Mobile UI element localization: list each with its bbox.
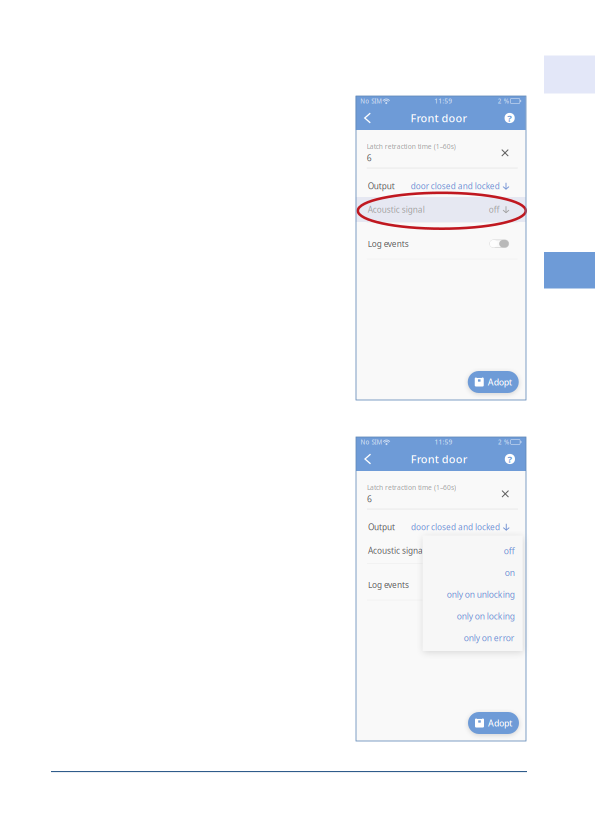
staticText: Acoustic signal — [368, 545, 425, 556]
button[interactable]: Clear — [498, 487, 512, 501]
button[interactable]: Help — [499, 106, 526, 130]
staticText: 2 % — [498, 438, 509, 446]
staticText: only on error — [464, 632, 515, 643]
staticText: Adopt — [488, 717, 512, 729]
staticText: door closed and locked — [411, 521, 500, 532]
staticText: Front door — [410, 111, 467, 125]
staticText: on — [505, 567, 515, 578]
staticText: 2 % — [498, 97, 509, 105]
staticText: 11:59 — [434, 438, 452, 446]
staticText: ? — [507, 453, 512, 465]
button[interactable]: Back — [356, 447, 379, 471]
button[interactable]: Adopt — [468, 712, 519, 734]
staticText: door closed and locked — [411, 180, 500, 191]
staticText: only on unlocking — [447, 589, 515, 600]
staticText: Acoustic signal — [368, 204, 425, 215]
button[interactable]: Acoustic signal — [356, 197, 526, 222]
staticText: Adopt — [488, 376, 512, 388]
button[interactable]: only on locking — [423, 605, 523, 627]
staticText: Output — [368, 521, 395, 532]
staticText: ? — [507, 112, 512, 124]
staticText: No SIM — [360, 97, 382, 105]
button[interactable]: Log events — [490, 240, 509, 247]
button[interactable]: Help — [499, 447, 526, 471]
staticText: off — [489, 204, 500, 215]
staticText: 6 — [367, 152, 372, 164]
staticText: 6 — [367, 493, 372, 505]
staticText: Front door — [411, 452, 468, 466]
button[interactable]: Acoustic signal — [356, 538, 526, 563]
button[interactable]: only on unlocking — [423, 584, 523, 605]
staticText: Log events — [368, 238, 409, 249]
staticText: No SIM — [360, 438, 382, 446]
staticText: Latch retraction time (1–60s) — [367, 142, 456, 151]
button[interactable]: on — [423, 562, 523, 584]
button[interactable]: Clear — [498, 146, 512, 160]
staticText: Log events — [368, 579, 409, 590]
button[interactable]: Adopt — [468, 371, 519, 393]
staticText: only on locking — [457, 610, 515, 622]
staticText: 11:59 — [434, 97, 452, 105]
button[interactable]: Output — [356, 516, 526, 538]
staticText: Latch retraction time (1–60s) — [367, 483, 456, 492]
button[interactable]: Back — [356, 106, 379, 130]
button[interactable]: Output — [356, 175, 526, 197]
staticText: Output — [368, 180, 395, 191]
button[interactable]: off — [423, 540, 523, 562]
staticText: off — [504, 545, 515, 557]
button[interactable]: only on error — [423, 627, 523, 649]
